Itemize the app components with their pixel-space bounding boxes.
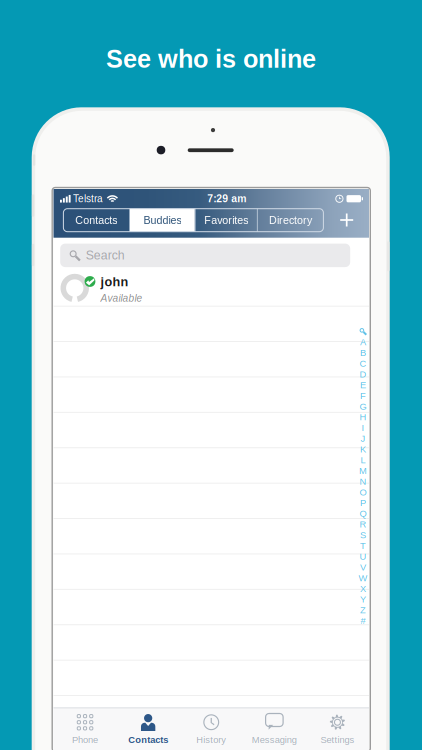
button[interactable]: Section index: [357, 326, 368, 626]
staticText: Messaging: [252, 734, 297, 745]
staticText: Contacts: [75, 214, 117, 226]
staticText: H: [359, 412, 366, 422]
staticText: K: [360, 444, 366, 454]
staticText: B: [360, 348, 366, 358]
staticText: R: [359, 519, 366, 529]
staticText: Search: [86, 248, 125, 262]
button[interactable]: Add contact: [332, 208, 362, 232]
staticText: See who is online: [106, 45, 316, 73]
staticText: Telstra: [73, 193, 103, 204]
staticText: G: [359, 401, 366, 412]
staticText: O: [359, 487, 366, 497]
staticText: Settings: [320, 734, 354, 745]
staticText: V: [360, 562, 366, 572]
button[interactable]: Settings: [306, 707, 369, 750]
staticText: Contacts: [128, 734, 168, 745]
staticText: I: [361, 423, 364, 433]
staticText: P: [360, 498, 366, 508]
staticText: Z: [360, 605, 366, 615]
staticText: M: [359, 465, 367, 476]
staticText: C: [359, 358, 366, 369]
staticText: #: [360, 616, 365, 626]
button[interactable]: Buddies: [130, 209, 195, 232]
staticText: T: [360, 540, 366, 551]
button[interactable]: john: [53, 269, 369, 306]
staticText: History: [196, 734, 226, 745]
staticText: F: [360, 390, 366, 401]
staticText: A: [360, 337, 366, 347]
staticText: Available: [101, 293, 143, 304]
staticText: Phone: [72, 734, 98, 745]
button[interactable]: Messaging: [243, 707, 306, 750]
staticText: S: [360, 530, 366, 540]
staticText: W: [358, 573, 367, 583]
staticText: john: [100, 275, 128, 289]
staticText: D: [359, 369, 366, 379]
button[interactable]: Phone: [53, 707, 117, 750]
staticText: N: [359, 476, 366, 487]
staticText: J: [360, 433, 365, 444]
button[interactable]: Contacts: [63, 209, 129, 232]
staticText: Y: [360, 594, 366, 604]
staticText: Q: [359, 508, 366, 519]
staticText: Favorites: [204, 214, 248, 226]
staticText: L: [360, 455, 365, 465]
button[interactable]: History: [180, 707, 243, 750]
button[interactable]: Contacts: [117, 707, 180, 750]
button[interactable]: Favorites: [196, 209, 257, 232]
staticText: 7:29 am: [207, 193, 246, 204]
button[interactable]: Directory: [258, 209, 323, 232]
staticText: Buddies: [143, 214, 181, 226]
staticText: Directory: [269, 214, 312, 226]
staticText: U: [359, 551, 366, 562]
staticText: E: [360, 380, 366, 390]
staticText: X: [360, 583, 366, 594]
button[interactable]: Search: [60, 244, 350, 267]
